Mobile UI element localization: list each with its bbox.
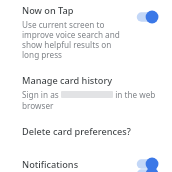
staticText: Use current screen to improve voice sear…: [22, 19, 130, 60]
button[interactable]: Manage card history: [0, 74, 172, 111]
staticText: Now on Tap: [22, 4, 74, 17]
button[interactable]: Notifications: [134, 158, 160, 170]
staticText: in the web: [113, 89, 156, 100]
staticText: Delete card preferences?: [22, 125, 131, 138]
staticText: Sign in as: [22, 89, 61, 100]
button[interactable]: Now on Tap: [0, 0, 172, 60]
button[interactable]: Delete card preferences?: [0, 123, 172, 140]
button[interactable]: Notifications: [0, 156, 172, 172]
staticText: browser: [22, 100, 54, 111]
staticText: Notifications: [22, 158, 134, 170]
staticText: Manage card history: [22, 74, 113, 87]
button[interactable]: Now on Tap toggle: [134, 8, 160, 26]
